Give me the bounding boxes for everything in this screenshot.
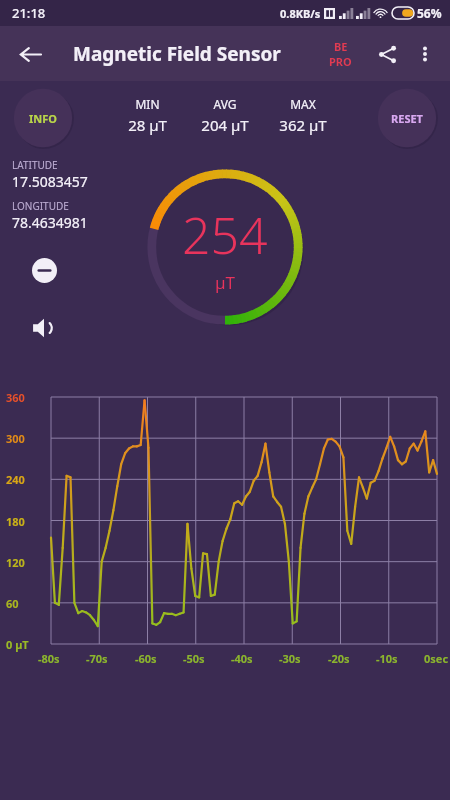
button[interactable]: RESET (376, 87, 438, 149)
staticText: 21:18 (12, 4, 46, 22)
staticText: µT (215, 271, 236, 294)
staticText: -60s (135, 651, 157, 666)
staticText: INFO (29, 111, 57, 126)
staticText: 28 µT (128, 115, 167, 135)
staticText: 0 µT (6, 637, 29, 652)
staticText: 362 µT (279, 115, 327, 135)
button[interactable]: BE (323, 35, 358, 73)
staticText: Magnetic Field Sensor (73, 41, 281, 67)
staticText: MIN (135, 96, 160, 112)
staticText: AVG (213, 96, 237, 112)
staticText: 17.5083457 (12, 172, 88, 191)
staticText: -80s (38, 651, 60, 666)
staticText: 240 (6, 472, 25, 487)
button[interactable]: Back (10, 34, 50, 74)
button[interactable]: More options (406, 35, 444, 73)
staticText: RESET (391, 111, 423, 126)
button[interactable]: Share (368, 35, 406, 73)
staticText: 56% (417, 5, 442, 21)
staticText: LATITUDE (12, 158, 58, 172)
staticText: 78.4634981 (12, 213, 88, 232)
button[interactable]: Remove (22, 248, 66, 292)
staticText: 0sec (424, 651, 449, 666)
staticText: 0.8KB/s (280, 6, 321, 21)
staticText: -20s (328, 651, 350, 666)
staticText: 120 (6, 555, 25, 570)
staticText: MAX (290, 96, 316, 112)
button[interactable]: Sound (22, 306, 66, 350)
staticText: 180 (6, 514, 25, 529)
staticText: -30s (279, 651, 301, 666)
staticText: -40s (231, 651, 253, 666)
staticText: 360 (6, 390, 25, 405)
staticText: 60 (6, 596, 19, 611)
staticText: -10s (376, 651, 398, 666)
staticText: 300 (6, 431, 25, 446)
staticText: -70s (86, 651, 108, 666)
staticText: BE (334, 39, 348, 54)
staticText: LONGITUDE (12, 199, 69, 213)
staticText: -50s (183, 651, 205, 666)
button[interactable]: INFO (12, 87, 74, 149)
staticText: PRO (329, 54, 352, 69)
staticText: 254 (182, 201, 268, 269)
staticText: 204 µT (201, 115, 249, 135)
